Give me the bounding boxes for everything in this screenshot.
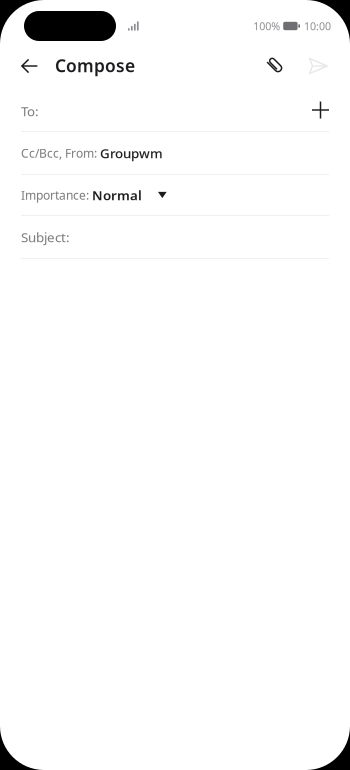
staticText: 10:00 bbox=[304, 19, 331, 33]
staticText: Normal bbox=[92, 186, 142, 204]
staticText: Cc/Bcc, From: bbox=[21, 145, 100, 161]
staticText: Groupwm bbox=[100, 144, 163, 162]
staticText: Compose bbox=[55, 54, 135, 77]
staticText: To: bbox=[21, 102, 39, 120]
staticText: 100% bbox=[253, 19, 280, 33]
staticText: Importance: bbox=[21, 187, 92, 203]
button[interactable]: Add recipient bbox=[312, 96, 329, 124]
button[interactable]: Send bbox=[309, 51, 328, 84]
button[interactable]: Attach file bbox=[266, 52, 285, 83]
staticText: Subject: bbox=[21, 228, 70, 246]
button[interactable]: Back bbox=[21, 51, 38, 84]
